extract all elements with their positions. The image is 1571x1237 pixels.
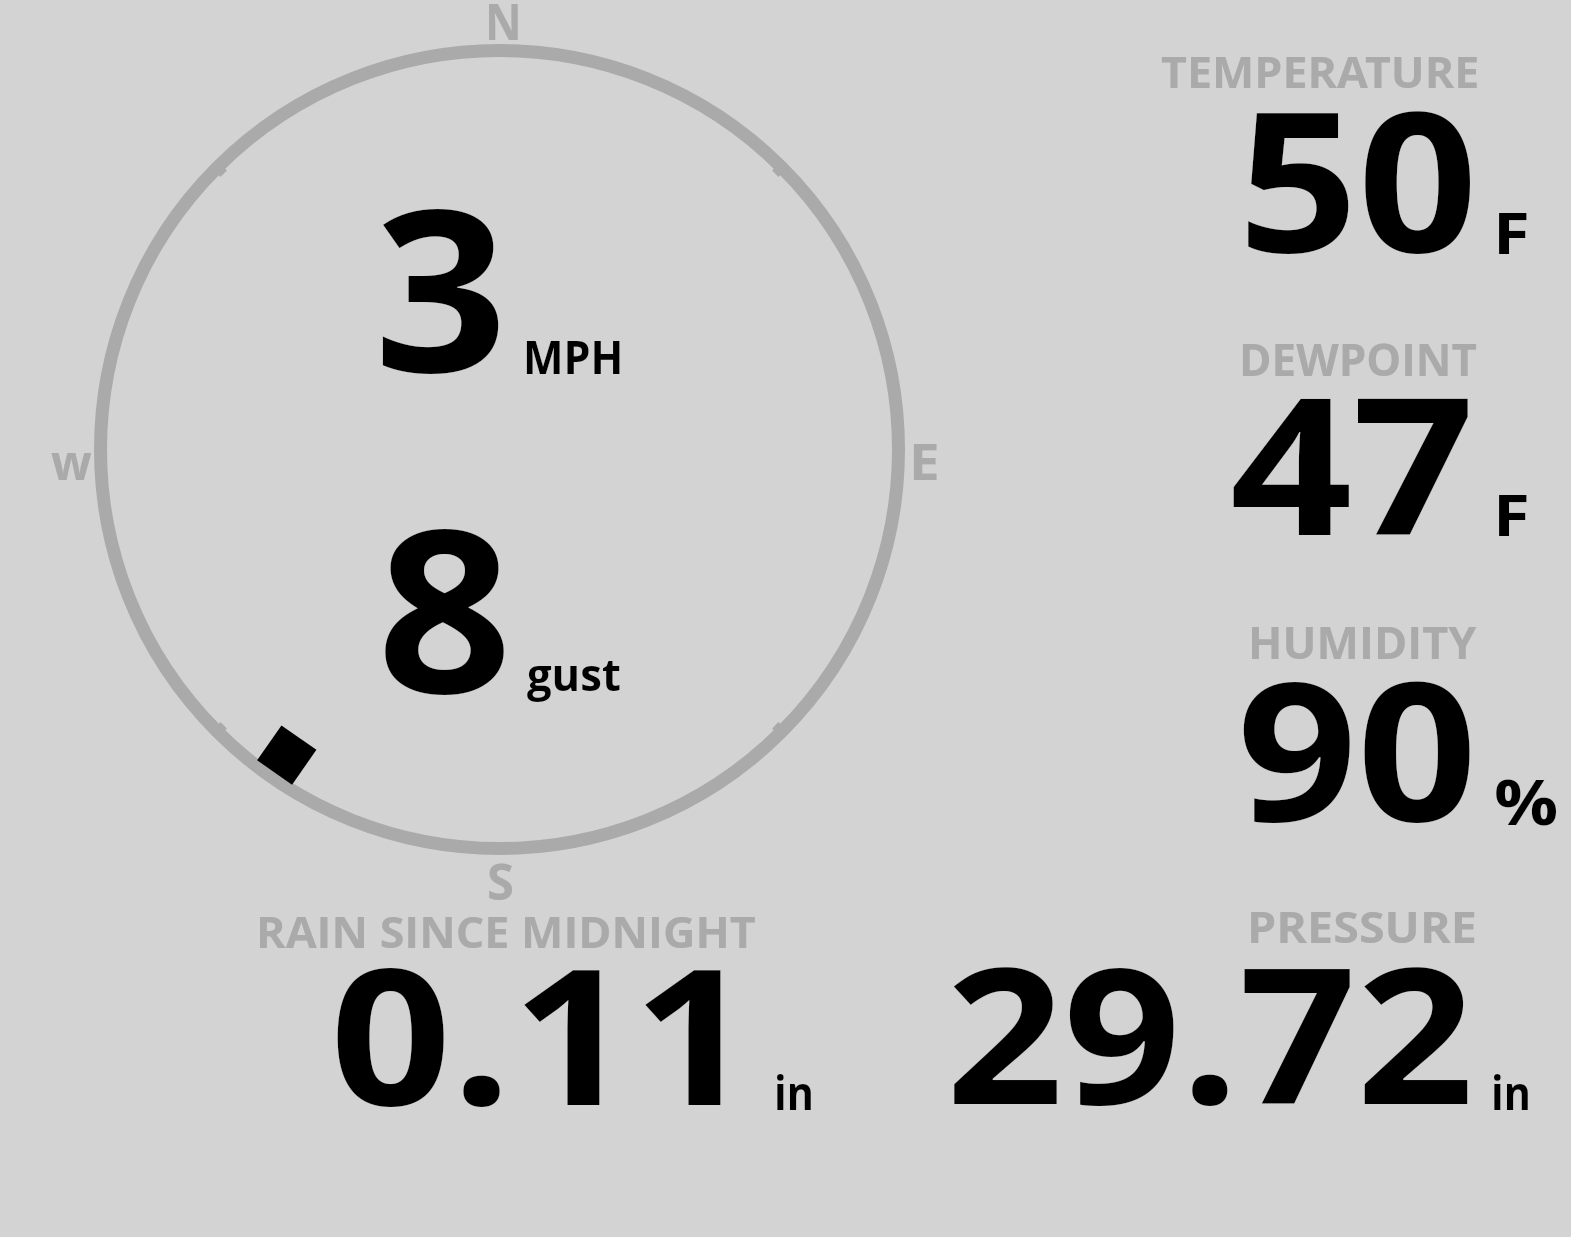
staticText: 29.72 <box>946 902 1474 1159</box>
staticText: in <box>774 1061 814 1124</box>
staticText: DEWPOINT <box>1239 328 1477 389</box>
staticText: in <box>1491 1061 1531 1124</box>
staticText: HUMIDITY <box>1248 611 1477 672</box>
button[interactable]: Temperature 50 degrees Fahrenheit <box>1100 40 1560 270</box>
staticText: N <box>485 0 522 55</box>
staticText: 3 <box>374 133 507 438</box>
staticText: 8 <box>377 450 512 759</box>
button[interactable]: Pressure 29.72 inches <box>930 890 1550 1120</box>
staticText: PRESSURE <box>1247 897 1477 956</box>
staticText: % <box>1494 759 1558 843</box>
staticText: F <box>1493 193 1531 271</box>
button[interactable]: Rain since midnight 0.11 inches <box>240 895 840 1120</box>
staticText: 0.11 <box>330 903 754 1160</box>
staticText: 50 <box>1238 45 1478 309</box>
staticText: w <box>51 428 92 495</box>
staticText: gust <box>527 643 621 704</box>
staticText: F <box>1493 475 1531 553</box>
button[interactable]: Wind 3 miles per hour, gusting 8, from t… <box>90 40 910 860</box>
button[interactable]: Humidity 90 percent <box>1100 610 1560 840</box>
staticText: E <box>909 427 941 495</box>
staticText: RAIN SINCE MIDNIGHT <box>256 902 756 961</box>
button[interactable]: Dewpoint 47 degrees Fahrenheit <box>1100 325 1560 555</box>
staticText: S <box>487 845 515 914</box>
staticText: TEMPERATURE <box>1161 42 1480 101</box>
staticText: 90 <box>1237 615 1478 878</box>
staticText: MPH <box>523 325 624 388</box>
staticText: 47 <box>1230 332 1475 591</box>
